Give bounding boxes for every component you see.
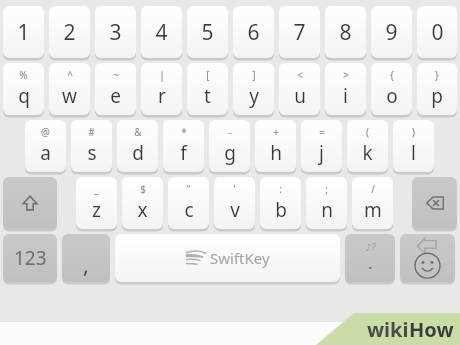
button[interactable]: +: [255, 120, 296, 172]
staticText: }: [435, 68, 439, 82]
button[interactable]: 4: [141, 6, 182, 58]
staticText: a: [40, 140, 51, 166]
staticText: n: [321, 197, 333, 223]
staticText: h: [270, 140, 282, 166]
staticText: u: [294, 83, 306, 109]
button[interactable]: ): [393, 120, 434, 172]
button[interactable]: ': [214, 177, 255, 229]
button[interactable]: @: [25, 120, 66, 172]
button[interactable]: 2: [49, 6, 90, 58]
button[interactable]: >: [325, 63, 366, 115]
staticText: k: [362, 140, 373, 166]
staticText: ^: [67, 68, 73, 82]
staticText: c: [184, 197, 194, 223]
button[interactable]: =: [301, 120, 342, 172]
staticText: 5: [201, 18, 214, 47]
button[interactable]: ^: [49, 63, 90, 115]
staticText: +: [273, 125, 279, 139]
staticText: {: [390, 68, 394, 82]
staticText: 4: [155, 18, 168, 47]
staticText: f: [180, 140, 187, 166]
staticText: $: [140, 182, 146, 196]
button[interactable]: -: [209, 120, 250, 172]
staticText: &: [134, 125, 142, 139]
staticText: d: [132, 140, 144, 166]
staticText: s: [87, 140, 97, 166]
staticText: ): [412, 125, 415, 139]
staticText: o: [386, 83, 398, 109]
staticText: 7: [293, 18, 306, 47]
staticText: (: [366, 125, 369, 139]
button[interactable]: ~: [95, 63, 136, 115]
staticText: ~: [113, 68, 119, 82]
staticText: #: [88, 125, 95, 139]
staticText: -: [228, 125, 232, 139]
button[interactable]: 123: [3, 234, 57, 282]
staticText: j: [319, 140, 324, 166]
staticText: 1: [17, 18, 30, 47]
staticText: l: [411, 140, 416, 166]
button[interactable]: &: [117, 120, 158, 172]
staticText: _: [94, 182, 99, 196]
button[interactable]: _: [76, 177, 117, 229]
staticText: =: [319, 125, 325, 139]
button[interactable]: (: [347, 120, 388, 172]
staticText: x: [137, 197, 148, 223]
button[interactable]: [: [187, 63, 228, 115]
staticText: @: [41, 125, 50, 139]
button[interactable]: ": [168, 177, 209, 229]
staticText: ]: [252, 68, 256, 82]
button[interactable]: #: [71, 120, 112, 172]
button[interactable]: 0: [417, 6, 457, 58]
staticText: t: [204, 83, 211, 109]
staticText: 8: [339, 18, 352, 47]
button[interactable]: Backspace: [412, 177, 457, 229]
staticText: .: [368, 251, 373, 274]
button[interactable]: *: [163, 120, 204, 172]
staticText: ": [186, 182, 191, 196]
staticText: ,: [83, 249, 89, 279]
staticText: 2: [63, 18, 76, 47]
staticText: q: [18, 83, 30, 109]
staticText: z: [92, 197, 101, 223]
staticText: wiki: [367, 316, 409, 343]
staticText: >: [343, 68, 349, 82]
button[interactable]: |: [141, 63, 182, 115]
button[interactable]: <: [279, 63, 320, 115]
button[interactable]: Emoji and enter: [400, 234, 455, 282]
button[interactable]: ♪?: [345, 234, 395, 282]
button[interactable]: 3: [95, 6, 136, 58]
button[interactable]: Shift: [3, 177, 57, 229]
button[interactable]: ]: [233, 63, 274, 115]
button[interactable]: 7: [279, 6, 320, 58]
button[interactable]: 8: [325, 6, 366, 58]
staticText: g: [224, 140, 236, 166]
staticText: v: [230, 197, 240, 223]
button[interactable]: 5: [187, 6, 228, 58]
button[interactable]: {: [371, 63, 412, 115]
button[interactable]: Space: [115, 234, 340, 282]
staticText: m: [364, 197, 382, 223]
staticText: <: [297, 68, 303, 82]
button[interactable]: 6: [233, 6, 274, 58]
staticText: i: [343, 83, 348, 109]
staticText: 3: [109, 18, 122, 47]
button[interactable]: /: [352, 177, 393, 229]
button[interactable]: 1: [3, 6, 44, 58]
button[interactable]: ,: [62, 234, 110, 282]
staticText: ♪?: [365, 240, 376, 254]
staticText: p: [431, 83, 443, 109]
button[interactable]: :: [260, 177, 301, 229]
button[interactable]: $: [122, 177, 163, 229]
staticText: 6: [247, 18, 260, 47]
button[interactable]: %: [3, 63, 44, 115]
staticText: y: [249, 83, 259, 109]
button[interactable]: 9: [371, 6, 412, 58]
button[interactable]: }: [417, 63, 457, 115]
staticText: 123: [14, 245, 47, 271]
staticText: /: [371, 182, 375, 196]
staticText: 9: [385, 18, 398, 47]
staticText: e: [110, 83, 121, 109]
staticText: ': [233, 182, 236, 196]
button[interactable]: ;: [306, 177, 347, 229]
